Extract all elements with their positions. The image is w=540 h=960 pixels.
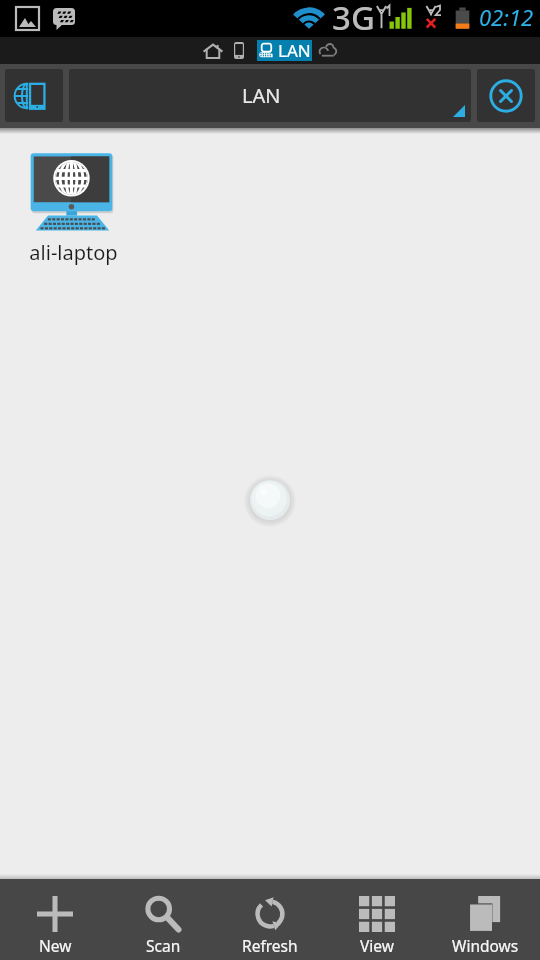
- button[interactable]: Windows: [433, 896, 537, 960]
- button[interactable]: Cloud: [314, 39, 341, 62]
- button[interactable]: New: [3, 896, 107, 960]
- staticText: LAN: [242, 82, 281, 109]
- staticText: Refresh: [242, 935, 298, 956]
- staticText: ali-laptop: [29, 239, 118, 266]
- button[interactable]: Device: [228, 39, 250, 62]
- staticText: 3G: [332, 0, 375, 32]
- button[interactable]: LAN: [69, 69, 471, 122]
- staticText: 02:12: [479, 2, 534, 32]
- staticText: Scan: [146, 935, 181, 956]
- button[interactable]: ali-laptop: [11, 152, 135, 266]
- staticText: Windows: [452, 935, 519, 956]
- button[interactable]: Network mode: [5, 69, 63, 122]
- button[interactable]: Scan: [111, 896, 215, 960]
- staticText: View: [360, 935, 394, 956]
- button[interactable]: View: [325, 896, 429, 960]
- button[interactable]: LAN: [257, 40, 312, 61]
- button[interactable]: Home: [197, 39, 228, 62]
- button[interactable]: Close: [477, 69, 535, 122]
- staticText: LAN: [278, 39, 311, 60]
- button[interactable]: Refresh: [218, 896, 322, 960]
- staticText: New: [39, 935, 72, 956]
